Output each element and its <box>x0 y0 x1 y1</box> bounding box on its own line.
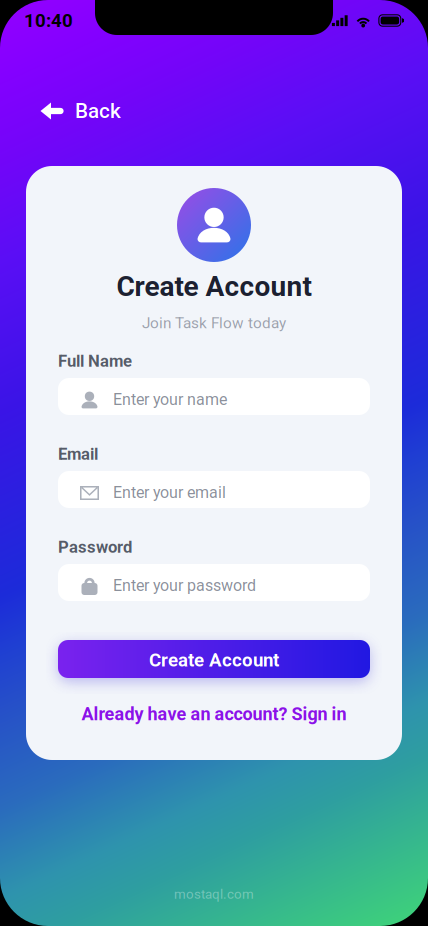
staticText: 10:40 <box>24 10 73 31</box>
staticText: mostaql.com <box>174 886 254 902</box>
staticText: Enter your password <box>113 576 256 595</box>
staticText: Full Name <box>58 351 132 371</box>
button[interactable]: Enter your password <box>58 564 370 601</box>
staticText: Create Account <box>149 649 279 671</box>
staticText: Email <box>58 444 98 464</box>
staticText: Join Task Flow today <box>142 314 286 332</box>
button[interactable]: Enter your name <box>58 378 370 415</box>
staticText: Enter your email <box>113 483 226 502</box>
staticText: Already have an account? Sign in <box>81 703 346 725</box>
button[interactable]: Back <box>0 75 139 131</box>
staticText: Enter your name <box>113 390 227 409</box>
staticText: Password <box>58 537 132 557</box>
button[interactable]: Create Account <box>58 640 370 678</box>
button[interactable]: Enter your email <box>58 471 370 508</box>
button[interactable]: Already have an account? Sign in <box>58 703 370 725</box>
staticText: Back <box>75 99 121 123</box>
staticText: Create Account <box>116 270 311 303</box>
